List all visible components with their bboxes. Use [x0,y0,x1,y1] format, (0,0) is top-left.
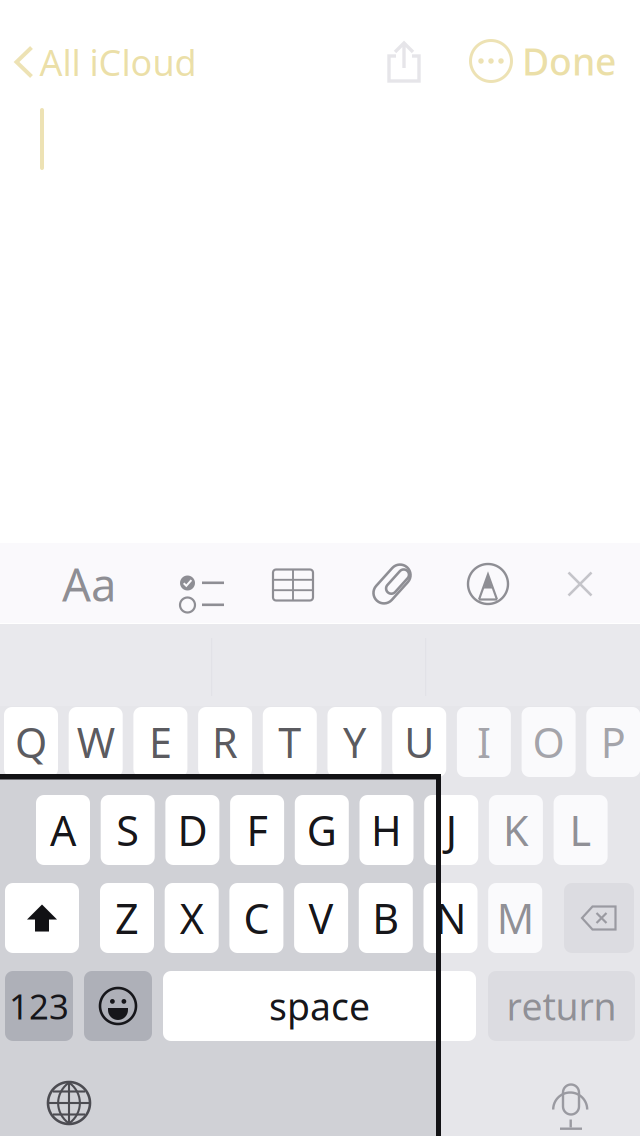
staticText: L [570,803,592,857]
button[interactable]: Checklist [169,564,213,601]
staticText: M [497,891,534,945]
button[interactable]: Y [327,707,381,777]
staticText: C [243,891,269,945]
staticText: V [309,891,334,945]
staticText: P [601,715,626,769]
button[interactable]: X [165,883,219,953]
button[interactable]: Next keyboard [47,1081,91,1125]
staticText: O [533,715,565,769]
button[interactable]: 123 [5,971,73,1041]
button[interactable]: C [229,883,283,953]
button[interactable]: A [36,795,90,865]
staticText: E [149,715,172,769]
staticText: N [435,891,466,945]
staticText: R [212,715,238,769]
staticText: Aa [62,554,116,614]
button[interactable]: space [163,971,476,1041]
staticText: I [477,715,491,769]
staticText: S [116,803,139,857]
staticText: T [278,715,301,769]
button[interactable]: Share [387,41,421,83]
button[interactable]: I [457,707,511,777]
button[interactable]: R [198,707,252,777]
button[interactable]: S [101,795,155,865]
staticText: return [506,981,616,1031]
button[interactable]: L [554,795,608,865]
button[interactable]: E [133,707,187,777]
button[interactable]: D [165,795,219,865]
button[interactable]: P [586,707,640,777]
button[interactable]: O [522,707,576,777]
button[interactable]: All iCloud [0,30,200,92]
button[interactable]: F [230,795,284,865]
button[interactable]: K [489,795,543,865]
staticText: H [371,803,402,857]
button[interactable]: N [423,883,477,953]
button[interactable]: return [488,971,635,1041]
button[interactable]: Aa [50,544,128,624]
button[interactable]: Done [480,30,640,92]
staticText: X [180,891,204,945]
button[interactable]: Attach file [369,561,415,607]
button[interactable]: Close [567,571,593,597]
button[interactable]: T [263,707,317,777]
staticText: All iCloud [39,38,196,86]
staticText: U [404,715,434,769]
button[interactable]: Table [273,569,313,600]
staticText: D [177,803,207,857]
button[interactable]: U [392,707,446,777]
staticText: A [50,803,76,857]
staticText: Done [522,36,616,86]
button[interactable]: G [295,795,349,865]
staticText: G [307,803,337,857]
staticText: K [503,803,529,857]
button[interactable]: Emoji [84,971,152,1041]
staticText: Q [15,715,47,769]
staticText: Z [115,891,139,945]
button[interactable]: Markup [467,563,509,605]
staticText: W [77,715,115,769]
staticText: B [372,891,399,945]
button[interactable]: Shift [5,883,79,953]
staticText: J [446,803,457,857]
button[interactable]: W [69,707,123,777]
button[interactable]: Delete [564,883,634,953]
button[interactable]: B [359,883,413,953]
staticText: Y [343,715,366,769]
button[interactable]: Q [4,707,58,777]
button[interactable]: M [488,883,542,953]
button[interactable]: J [424,795,478,865]
button[interactable]: More [470,40,512,82]
button[interactable]: V [294,883,348,953]
staticText: space [269,981,370,1031]
staticText: 123 [9,983,69,1029]
button[interactable]: Z [100,883,154,953]
button[interactable]: Dictate [552,1078,590,1126]
button[interactable]: H [359,795,413,865]
staticText: F [247,803,268,857]
